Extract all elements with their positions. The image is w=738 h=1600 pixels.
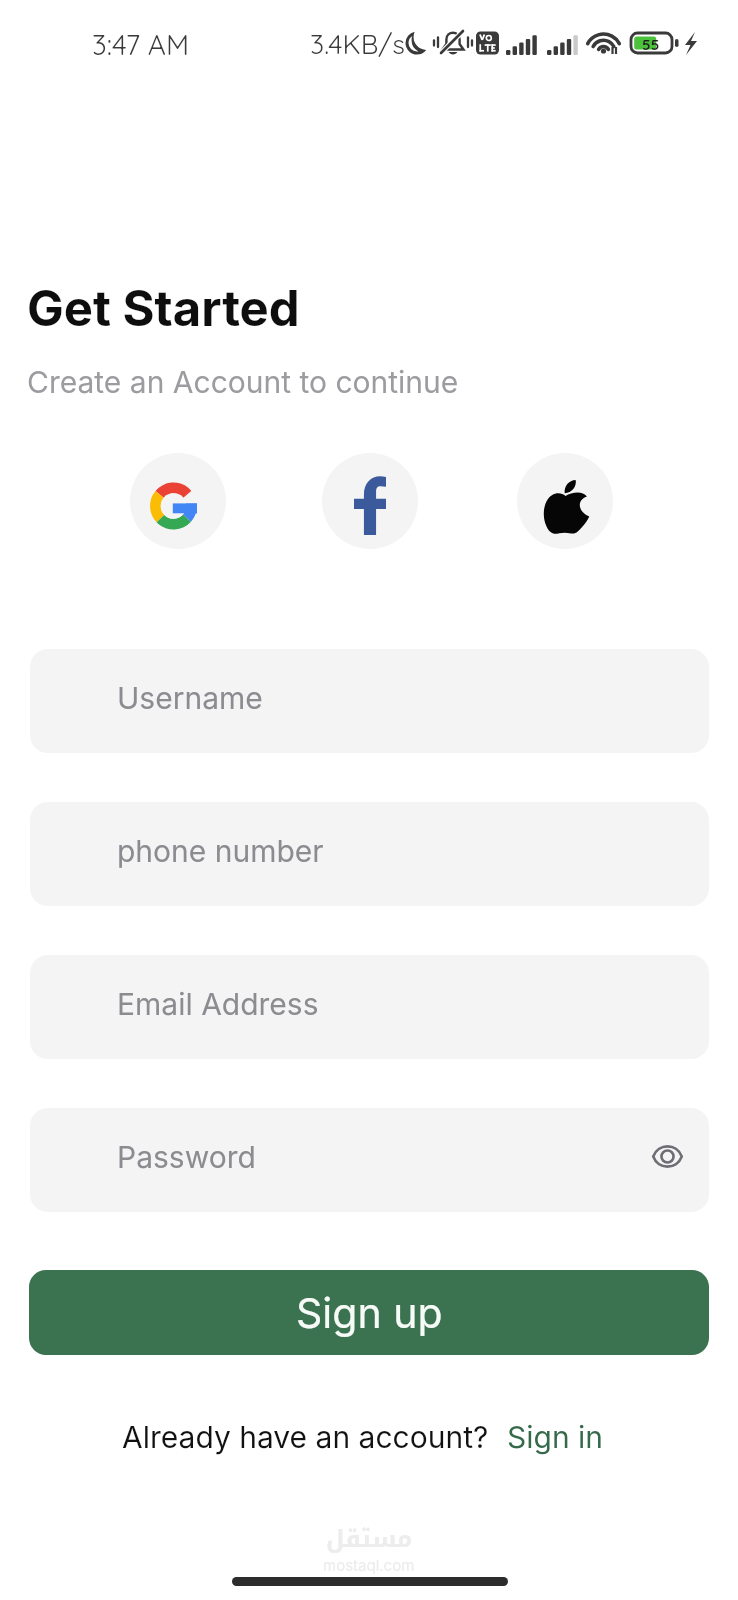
staticText: phone number [117, 833, 324, 869]
staticText: Sign in [507, 1419, 604, 1455]
button[interactable]: Sign up with Facebook [322, 453, 418, 549]
staticText: Email Address [117, 986, 319, 1022]
staticText: mostaql.com [323, 1556, 415, 1574]
staticText: Create an Account to continue [27, 364, 459, 400]
button[interactable]: phone number [30, 802, 709, 906]
staticText: Already have an account? [122, 1419, 489, 1455]
staticText: Sign up [296, 1288, 443, 1338]
staticText: 55 [642, 35, 660, 54]
button[interactable]: Username [30, 649, 709, 753]
staticText: 3.4KB/s [310, 27, 406, 61]
button[interactable]: Sign up [29, 1270, 709, 1355]
button[interactable]: Show password [642, 1135, 692, 1185]
button[interactable]: Email Address [30, 955, 709, 1059]
staticText: Get Started [27, 279, 300, 338]
button[interactable]: Sign up with Google [130, 453, 226, 549]
button[interactable]: Sign in [507, 1419, 604, 1455]
staticText: 3:47 AM [92, 27, 190, 62]
button[interactable]: Password [30, 1108, 709, 1212]
staticText: Password [117, 1139, 256, 1175]
staticText: Username [117, 680, 263, 716]
staticText: مستقل [326, 1516, 413, 1562]
button[interactable]: Sign up with Apple [517, 453, 613, 549]
